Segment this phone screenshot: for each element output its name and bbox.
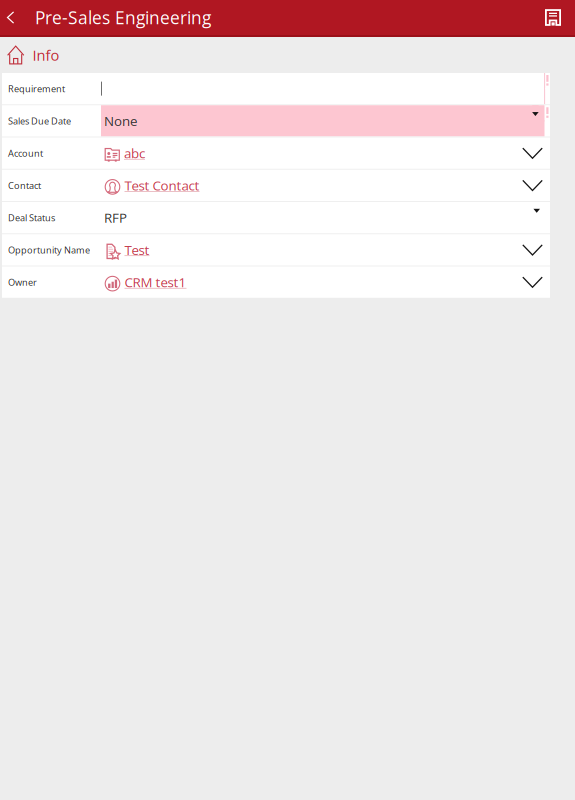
staticText: Owner xyxy=(8,276,37,288)
staticText: Test xyxy=(124,241,149,259)
staticText: abc xyxy=(124,144,145,162)
staticText: Requirement xyxy=(8,82,65,95)
button[interactable]: Sales Due Date xyxy=(2,105,550,136)
staticText: Deal Status xyxy=(8,211,55,224)
staticText: CRM test1 xyxy=(124,273,186,291)
staticText: Pre-Sales Engineering xyxy=(35,6,211,29)
staticText: Opportunity Name xyxy=(8,244,90,256)
staticText: Test Contact xyxy=(124,176,199,194)
button[interactable]: Requirement xyxy=(2,73,550,104)
button[interactable]: Save xyxy=(530,0,575,35)
staticText: None xyxy=(104,112,137,130)
button[interactable]: Opportunity Name xyxy=(2,234,550,265)
button[interactable]: Contact xyxy=(2,170,550,201)
staticText: Account xyxy=(8,147,43,159)
staticText: RFP xyxy=(104,208,127,227)
staticText: Sales Due Date xyxy=(8,115,71,127)
button[interactable]: Back xyxy=(0,0,35,35)
button[interactable]: Account xyxy=(2,137,550,169)
button[interactable]: Owner xyxy=(2,266,550,298)
button[interactable]: Deal Status xyxy=(2,202,550,233)
staticText: Info xyxy=(32,45,59,65)
staticText: Contact xyxy=(8,179,41,192)
